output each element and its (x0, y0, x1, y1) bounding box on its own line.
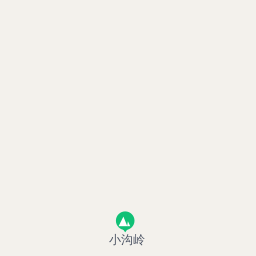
button[interactable]: 小沟岭 (105, 207, 147, 247)
staticText: 小沟岭 (109, 232, 145, 247)
